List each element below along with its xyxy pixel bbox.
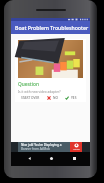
staticText: START OVER	[21, 96, 40, 100]
button[interactable]: START OVER	[20, 96, 41, 100]
button[interactable]: Recents	[69, 152, 80, 165]
staticText: Banner from AdMob	[21, 147, 50, 151]
staticText: Nice job! You're Displaying a	[21, 143, 62, 147]
staticText: Boat Problem Troubleshooter	[15, 24, 89, 31]
button[interactable]: NO	[46, 96, 59, 100]
button[interactable]: YES	[64, 96, 78, 100]
staticText: Is it with new video adapter?	[18, 90, 61, 94]
button[interactable]: Back	[24, 152, 35, 165]
button[interactable]: Nice job! You're Displaying a	[11, 142, 90, 152]
staticText: Question	[18, 81, 39, 88]
staticText: AdMob	[73, 148, 80, 151]
staticText: NO	[53, 96, 58, 100]
button[interactable]: Home	[46, 152, 57, 165]
staticText: YES	[71, 96, 77, 100]
button[interactable]: Question	[15, 39, 86, 102]
